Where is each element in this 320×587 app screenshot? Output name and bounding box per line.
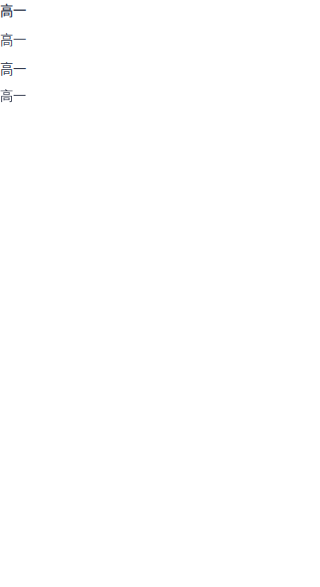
- staticText: 高一: [0, 0, 26, 19]
- staticText: 高一: [0, 59, 26, 78]
- staticText: 高一: [0, 29, 26, 49]
- staticText: 高一: [0, 88, 26, 104]
